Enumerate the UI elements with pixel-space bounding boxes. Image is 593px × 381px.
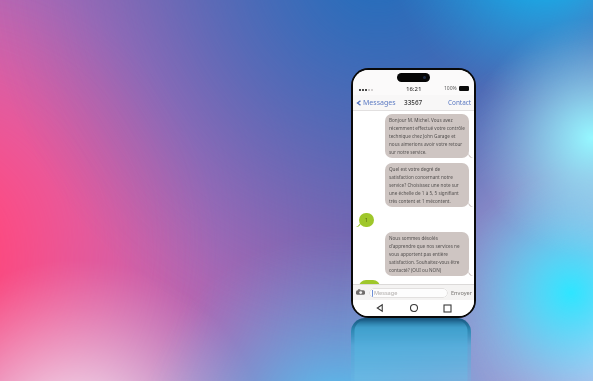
button[interactable]: Message <box>369 288 448 298</box>
button[interactable]: Bonjour M. Michel. Vous avez récemment e… <box>385 114 469 158</box>
staticText: 16:21 <box>406 85 422 93</box>
button[interactable]: Envoyer <box>451 289 473 297</box>
button[interactable]: Home <box>407 301 421 315</box>
staticText: Quel est votre degré de satisfaction con… <box>389 166 465 204</box>
button[interactable]: Contact <box>448 98 472 107</box>
staticText: Messages <box>363 98 396 108</box>
button[interactable]: 1 <box>359 213 374 227</box>
button[interactable]: OUI <box>359 280 380 284</box>
button[interactable]: Nous sommes désolés d'apprendre que nos … <box>385 232 469 276</box>
button[interactable]: Camera <box>356 288 365 297</box>
button[interactable]: Quel est votre degré de satisfaction con… <box>385 163 469 207</box>
staticText: 1 <box>365 217 368 223</box>
staticText: Bonjour M. Michel. Vous avez récemment e… <box>389 117 465 155</box>
staticText: 100% <box>444 85 457 92</box>
staticText: Message <box>374 289 398 297</box>
staticText: Nous sommes désolés d'apprendre que nos … <box>389 235 465 273</box>
button[interactable]: Back <box>373 301 387 315</box>
button[interactable]: Messages <box>356 98 396 108</box>
button[interactable]: Recent apps <box>440 301 454 315</box>
staticText: 33567 <box>404 98 423 107</box>
